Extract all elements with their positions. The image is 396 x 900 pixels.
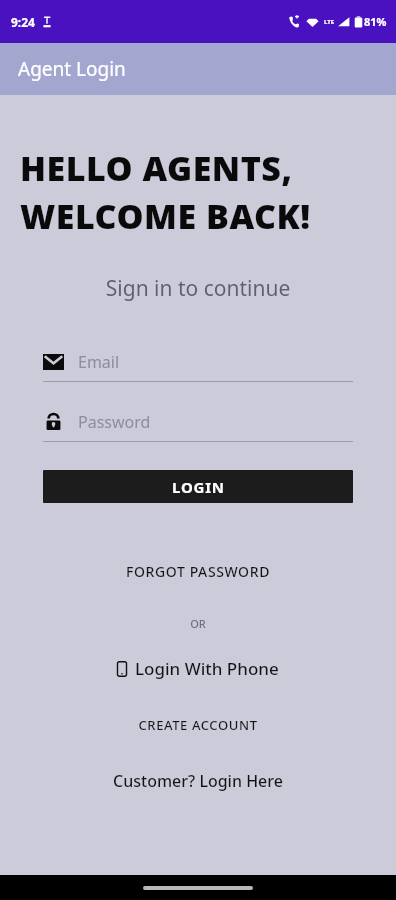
button[interactable]: FORGOT PASSWORD [0, 562, 396, 581]
staticText: Password [78, 411, 151, 433]
button[interactable]: CREATE ACCOUNT [0, 716, 396, 734]
staticText: Email [78, 351, 120, 373]
staticText: LOGIN [172, 477, 225, 497]
staticText: Sign in to continue [0, 274, 396, 303]
staticText: OR [0, 616, 396, 631]
button[interactable]: Customer? Login Here [0, 770, 396, 792]
staticText: FORGOT PASSWORD [126, 562, 270, 581]
staticText: 9:24 [11, 14, 35, 30]
button[interactable]: Password [43, 411, 353, 442]
staticText: Customer? Login Here [113, 770, 283, 792]
staticText: 81% [364, 14, 387, 29]
staticText: CREATE ACCOUNT [138, 716, 258, 734]
staticText: Agent Login [18, 56, 126, 82]
button[interactable]: Email [43, 351, 353, 382]
staticText: Login With Phone [135, 657, 279, 680]
button[interactable]: LOGIN [43, 470, 353, 503]
staticText: HELLO AGENTS, [20, 145, 293, 191]
staticText: LTE [324, 18, 335, 26]
button[interactable]: Login With Phone [0, 657, 396, 680]
staticText: WELCOME BACK! [20, 193, 311, 239]
